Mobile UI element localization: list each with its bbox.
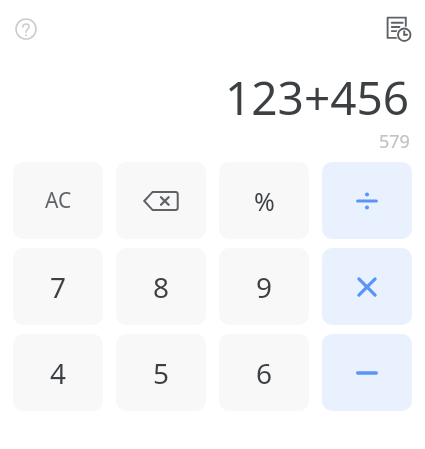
staticText: 123+456 [225, 66, 410, 124]
staticText: 8 [153, 268, 170, 306]
button[interactable]: 5 [116, 334, 206, 411]
staticText: % [254, 184, 275, 218]
staticText: 579 [379, 129, 410, 154]
button[interactable]: 8 [116, 248, 206, 325]
staticText: 5 [153, 354, 170, 392]
button[interactable]: Divide [322, 162, 412, 239]
staticText: 7 [50, 268, 67, 306]
button[interactable]: Help [13, 16, 39, 42]
button[interactable]: 7 [13, 248, 103, 325]
staticText: 9 [256, 268, 273, 306]
button[interactable]: All clear [13, 162, 103, 239]
button[interactable]: Minus [322, 334, 412, 411]
button[interactable]: 4 [13, 334, 103, 411]
staticText: 4 [50, 354, 67, 392]
button[interactable]: 6 [219, 334, 309, 411]
button[interactable]: History [383, 13, 413, 43]
button[interactable]: Backspace [116, 162, 206, 239]
staticText: AC [45, 186, 72, 215]
button[interactable]: 9 [219, 248, 309, 325]
button[interactable]: Multiply [322, 248, 412, 325]
staticText: 6 [256, 354, 273, 392]
button[interactable]: Percent [219, 162, 309, 239]
